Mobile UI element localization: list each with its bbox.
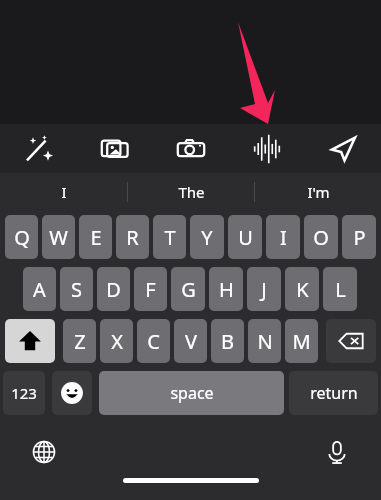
button[interactable]: Emoji [52,371,92,415]
staticText: Z [74,328,86,355]
staticText: M [292,328,311,355]
staticText: U [238,224,253,251]
button[interactable]: Change keyboard [24,432,64,472]
button[interactable]: L [323,267,357,311]
staticText: Q [14,224,30,251]
staticText: H [219,276,234,303]
button[interactable]: Audio [229,124,305,173]
button[interactable]: A [23,267,56,311]
button[interactable]: Effects [0,124,77,173]
button[interactable]: space [99,371,284,415]
button[interactable]: R [116,215,149,259]
staticText: F [145,276,156,303]
button[interactable]: O [304,215,338,259]
button[interactable]: H [209,267,243,311]
button[interactable]: T [153,215,186,259]
button[interactable]: Backspace [326,319,376,363]
button[interactable]: Shift [5,319,55,363]
button[interactable]: Y [190,215,224,259]
staticText: O [313,224,329,251]
button[interactable]: G [171,267,205,311]
staticText: T [164,224,176,251]
button[interactable]: W [42,215,75,259]
staticText: The [178,182,205,202]
staticText: S [71,276,82,303]
staticText: B [221,328,234,355]
staticText: J [261,276,267,303]
button[interactable]: S [60,267,93,311]
button[interactable]: Photos [77,124,153,173]
button[interactable]: K [285,267,319,311]
button[interactable]: 123 [3,371,45,415]
button[interactable]: C [137,319,170,363]
staticText: L [335,276,346,303]
staticText: Y [201,224,213,251]
staticText: I'm [307,182,330,202]
button[interactable]: V [174,319,207,363]
staticText: X [111,328,123,355]
button[interactable]: Q [5,215,38,259]
staticText: 123 [11,383,37,403]
staticText: I [61,182,67,202]
button[interactable]: Dictation [317,432,357,472]
button[interactable]: Z [63,319,96,363]
staticText: V [185,328,197,355]
staticText: P [353,224,366,251]
staticText: A [33,276,46,303]
button[interactable]: U [228,215,262,259]
button[interactable]: J [247,267,281,311]
staticText: W [49,224,68,251]
staticText: R [126,224,139,251]
button[interactable]: return [289,371,378,415]
button[interactable]: E [79,215,112,259]
staticText: N [257,328,273,355]
button[interactable]: N [248,319,281,363]
button[interactable]: M [285,319,318,363]
staticText: K [296,276,309,303]
staticText: D [106,276,121,303]
button[interactable]: B [211,319,244,363]
button[interactable]: The [128,173,254,211]
staticText: I [280,224,287,251]
button[interactable]: Send [305,124,381,173]
button[interactable]: I [0,173,127,211]
button[interactable]: F [134,267,167,311]
button[interactable]: I [266,215,300,259]
button[interactable]: P [342,215,376,259]
staticText: E [90,224,102,251]
button[interactable]: Camera [153,124,229,173]
staticText: C [147,328,160,355]
staticText: G [181,276,196,303]
button[interactable]: D [97,267,130,311]
button[interactable]: I'm [255,173,381,211]
staticText: space [170,382,214,404]
staticText: return [310,382,358,404]
button[interactable]: X [100,319,133,363]
